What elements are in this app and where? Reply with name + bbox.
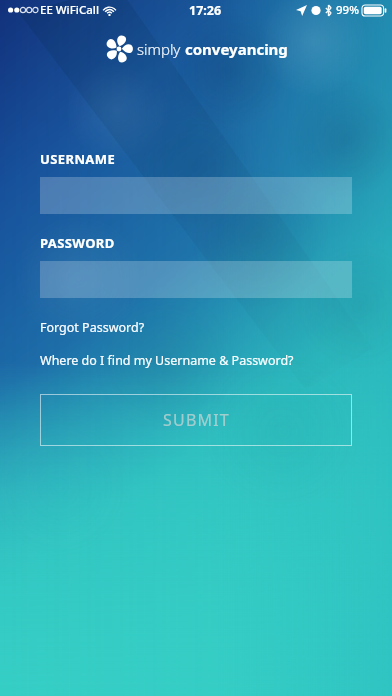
button[interactable]: Forgot Password? — [40, 319, 145, 336]
staticText: 17:26 — [189, 2, 222, 19]
staticText: SUBMIT — [163, 409, 230, 431]
staticText: PASSWORD — [40, 234, 115, 252]
staticText: 99% — [336, 2, 359, 18]
staticText: EE WiFiCall — [40, 2, 99, 18]
button[interactable] — [40, 177, 352, 214]
staticText: Forgot Password? — [40, 319, 145, 336]
button[interactable] — [40, 261, 352, 298]
staticText: USERNAME — [40, 150, 116, 168]
button[interactable]: Where do I find my Username & Password? — [40, 352, 294, 369]
button[interactable]: SUBMIT — [40, 394, 352, 446]
staticText: Where do I find my Username & Password? — [40, 352, 294, 369]
staticText: conveyancing — [185, 39, 288, 59]
staticText: simply — [137, 39, 185, 59]
